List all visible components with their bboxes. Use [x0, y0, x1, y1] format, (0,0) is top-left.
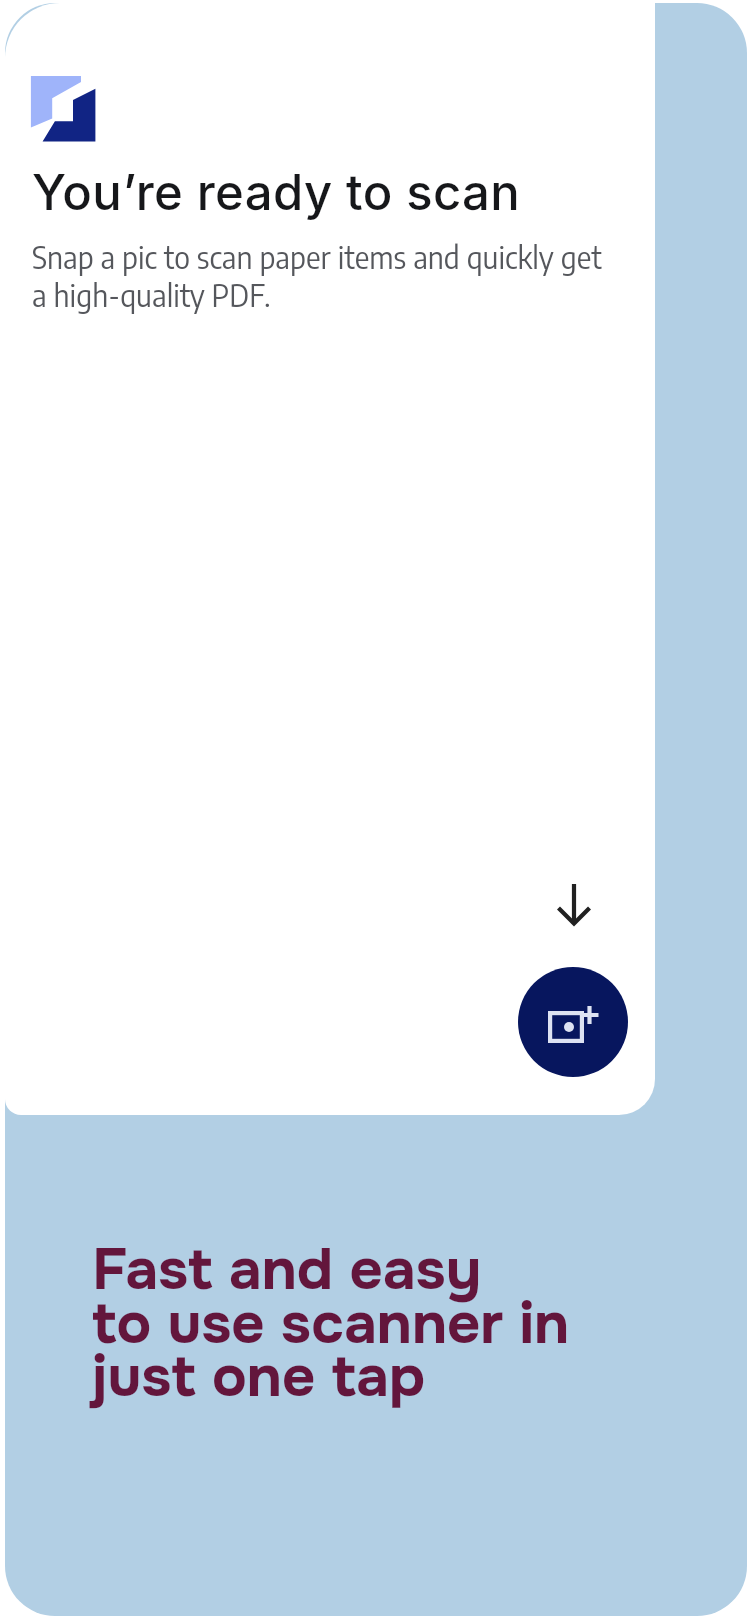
button[interactable]: Scan with camera	[518, 967, 628, 1077]
staticText: Fast and easy to use scanner in just one…	[92, 1233, 570, 1413]
staticText: Snap a pic to scan paper items and quick…	[32, 238, 602, 314]
staticText: You’re ready to scan	[32, 163, 521, 222]
